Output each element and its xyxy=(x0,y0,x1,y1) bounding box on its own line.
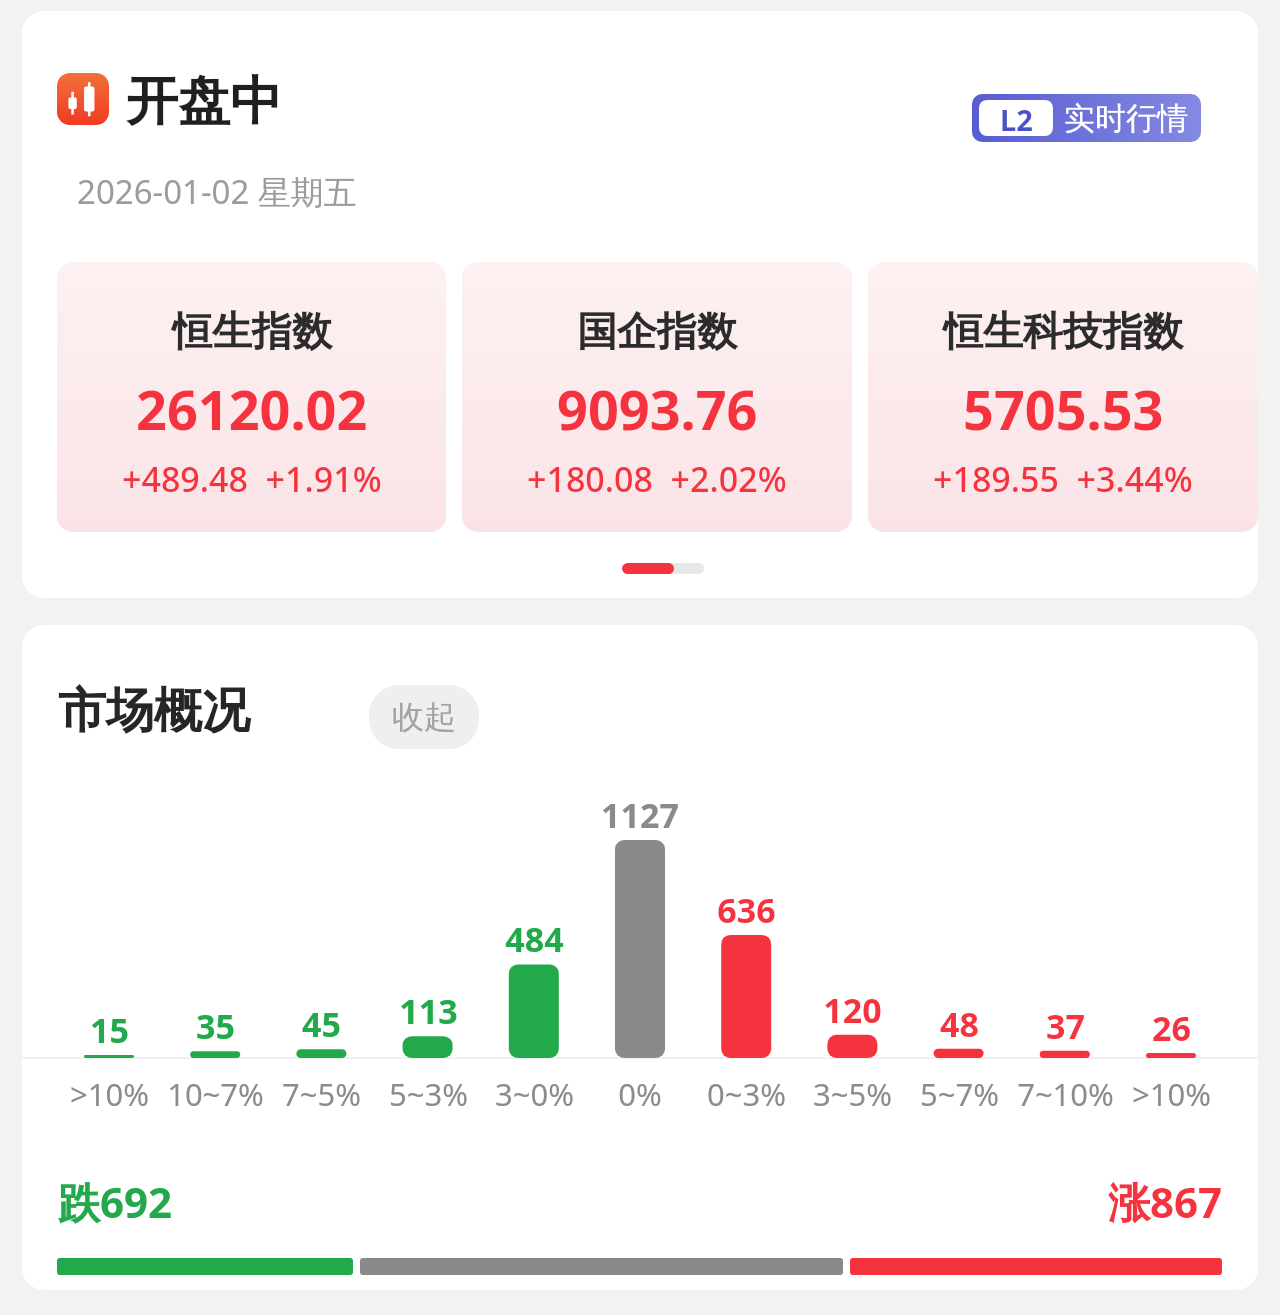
staticText: 涨867 xyxy=(958,1173,1222,1230)
staticText: 5~3% xyxy=(389,1073,468,1115)
staticText: 开盘中 xyxy=(126,69,282,135)
staticText: 113 xyxy=(399,988,458,1034)
staticText: 120 xyxy=(823,987,882,1033)
button[interactable]: L2 xyxy=(972,94,1201,142)
staticText: 636 xyxy=(717,887,776,933)
staticText: 实时行情 xyxy=(1064,99,1188,138)
staticText: 恒生指数 xyxy=(172,306,332,356)
staticText: 国企指数 xyxy=(577,306,737,356)
staticText: 48 xyxy=(940,1001,979,1047)
staticText: 15 xyxy=(90,1007,129,1053)
staticText: 9093.76 xyxy=(557,372,758,446)
button[interactable]: 恒生科技指数 xyxy=(868,262,1258,532)
staticText: +189.55 +3.44% xyxy=(933,456,1193,502)
staticText: 45 xyxy=(302,1001,341,1047)
staticText: L2 xyxy=(1000,100,1033,136)
staticText: >10% xyxy=(1132,1073,1211,1115)
staticText: 10~7% xyxy=(167,1073,264,1115)
staticText: 5705.53 xyxy=(963,372,1164,446)
staticText: 2026-01-02 星期五 xyxy=(77,169,357,214)
staticText: >10% xyxy=(70,1073,149,1115)
staticText: 收起 xyxy=(392,697,456,737)
staticText: 0% xyxy=(618,1073,662,1115)
staticText: 7~10% xyxy=(1017,1073,1114,1115)
staticText: 0~3% xyxy=(707,1073,786,1115)
staticText: 恒生科技指数 xyxy=(943,306,1183,356)
staticText: 跌692 xyxy=(58,1173,173,1230)
staticText: +489.48 +1.91% xyxy=(122,456,382,502)
staticText: 484 xyxy=(505,916,564,962)
staticText: 市场概况 xyxy=(58,681,250,741)
staticText: 7~5% xyxy=(282,1073,361,1115)
button[interactable]: 国企指数 xyxy=(462,262,852,532)
staticText: 1127 xyxy=(601,792,679,838)
staticText: +180.08 +2.02% xyxy=(527,456,787,502)
staticText: 26 xyxy=(1152,1005,1191,1051)
button[interactable]: 恒生指数 xyxy=(57,262,446,532)
staticText: 37 xyxy=(1046,1003,1085,1049)
staticText: 3~5% xyxy=(813,1073,892,1115)
staticText: 3~0% xyxy=(495,1073,574,1115)
staticText: 26120.02 xyxy=(136,372,368,446)
staticText: 5~7% xyxy=(920,1073,999,1115)
staticText: 35 xyxy=(196,1003,235,1049)
button[interactable]: 收起 xyxy=(369,685,479,749)
